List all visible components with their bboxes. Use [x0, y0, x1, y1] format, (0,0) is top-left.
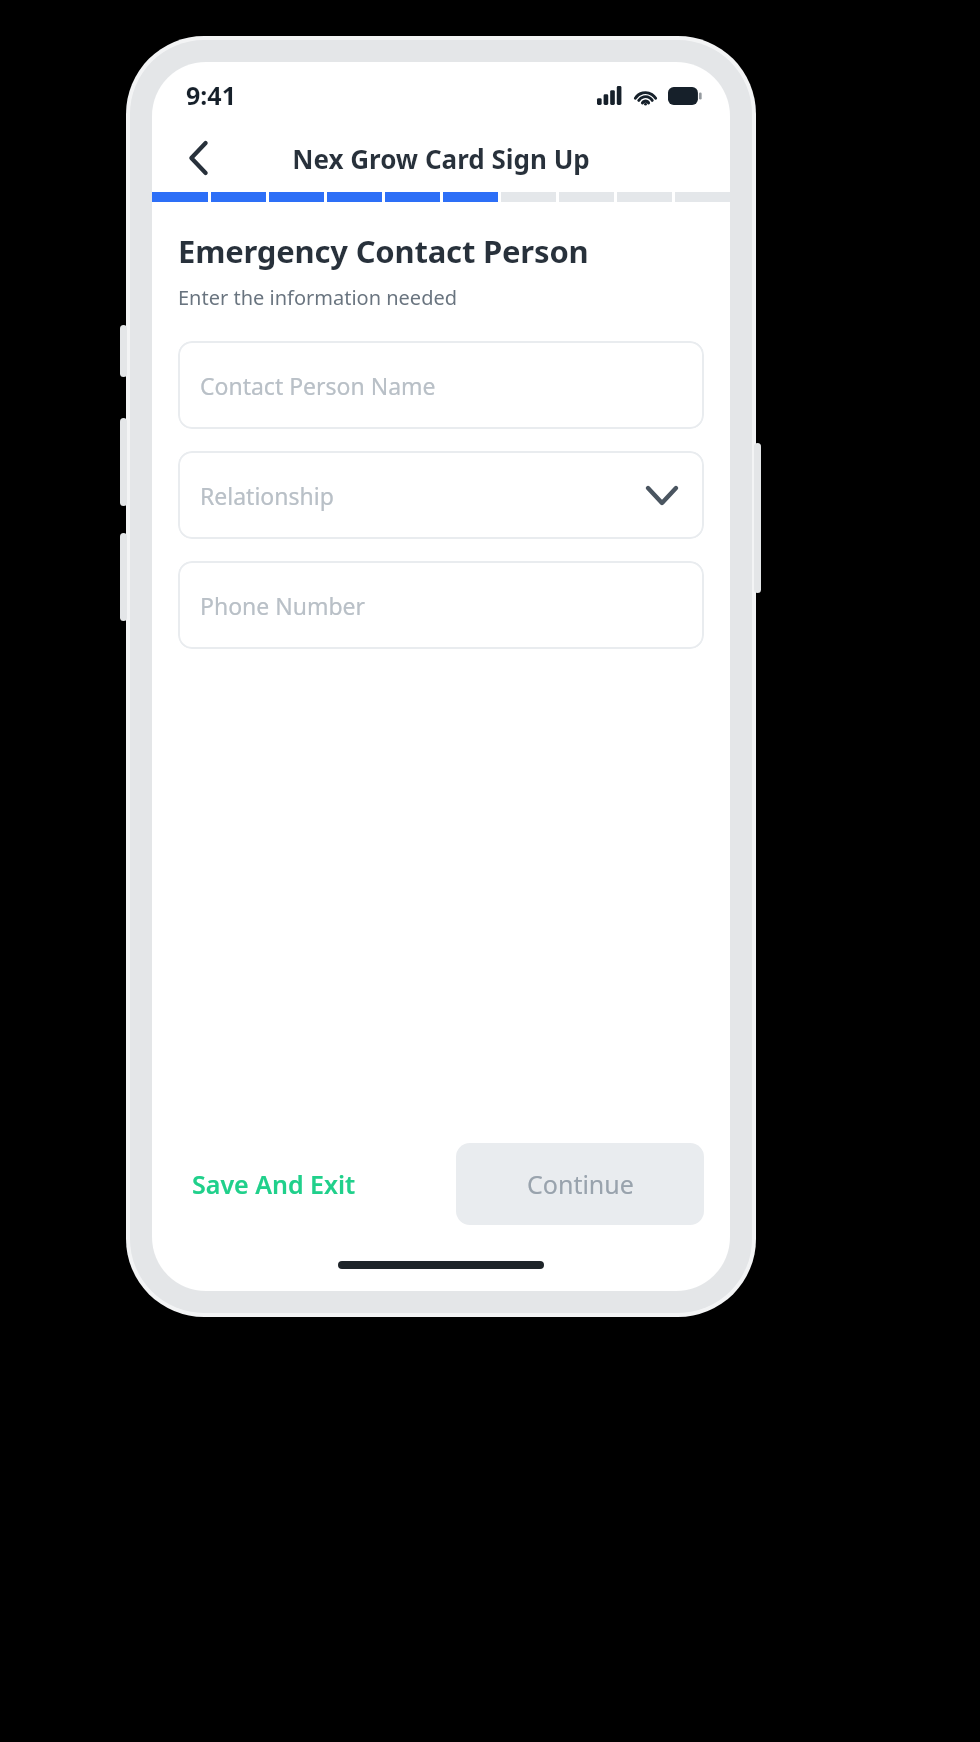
- button[interactable]: Relationship: [178, 451, 704, 539]
- staticText: Continue: [527, 1167, 634, 1201]
- button[interactable]: Back: [172, 132, 224, 184]
- staticText: Save And Exit: [192, 1167, 356, 1201]
- button[interactable]: Phone Number: [178, 561, 704, 649]
- staticText: 9:41: [186, 78, 236, 112]
- button[interactable]: Continue: [456, 1143, 704, 1225]
- staticText: Relationship: [200, 480, 334, 511]
- staticText: Emergency Contact Person: [178, 230, 589, 272]
- button[interactable]: Save And Exit: [178, 1153, 370, 1215]
- button[interactable]: Contact Person Name: [178, 341, 704, 429]
- staticText: Contact Person Name: [200, 370, 436, 401]
- staticText: Enter the information needed: [178, 284, 458, 311]
- staticText: Phone Number: [200, 590, 366, 621]
- staticText: Nex Grow Card Sign Up: [292, 141, 590, 176]
- other: Open dropdown: [642, 475, 682, 515]
